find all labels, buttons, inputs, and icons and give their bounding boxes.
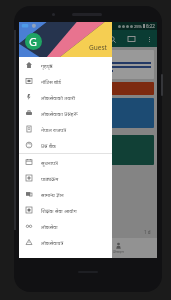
staticText: Civil Sub Engineer [78, 149, 98, 161]
button[interactable]: लोक सेवा आयोगको नयाँ सूचना [22, 50, 154, 79]
button[interactable]: व्यक्तिगत जानकारी [22, 98, 154, 128]
staticText: नोटिस बोर्ड [41, 78, 62, 85]
button[interactable]: गृहपृष्ठ [19, 57, 112, 73]
staticText: लोकसेवाको तयारी [41, 94, 76, 101]
button[interactable]: Messages [125, 33, 137, 45]
button[interactable]: लोकसेवाको तयारी [19, 89, 112, 105]
button[interactable]: सूचनापत्र [19, 154, 112, 170]
button[interactable]: लोकसेवापत्र [19, 234, 112, 250]
staticText: सामान्य ज्ञान [41, 191, 64, 198]
button[interactable]: Profile [113, 242, 124, 254]
staticText: लोकसेवापत्र [41, 239, 64, 246]
button[interactable]: प्रश्न बैंक [19, 137, 112, 153]
button[interactable]: सामान्य ज्ञान [19, 186, 112, 202]
button[interactable]: More options [144, 34, 154, 44]
staticText: लोकसेवाका प्रश्नहरू [41, 110, 78, 117]
staticText: 6:22 [146, 23, 155, 29]
staticText: लोक सेवा आयोगको नयाँ सूचना [25, 53, 93, 60]
button[interactable]: नेपाल राजपत्र [19, 121, 112, 137]
button[interactable]: पाठ्यक्रम [19, 170, 112, 186]
staticText: 25% [134, 24, 142, 29]
staticText: गृहपृष्ठ [41, 62, 53, 69]
button[interactable]: लोकसेवाका प्रश्नहरू [19, 105, 112, 121]
staticText: प्रश्न बैंक [41, 142, 56, 149]
button[interactable]: नोटिस बोर्ड [19, 73, 112, 89]
button[interactable]: Account avatar [25, 33, 42, 50]
button[interactable]: Search [106, 33, 118, 45]
staticText: 1 d [144, 229, 151, 235]
button[interactable]: Civil Sub Engineer [22, 135, 154, 165]
button[interactable]: लोकसेवा [19, 218, 112, 234]
staticText: लोकसेवा [41, 223, 58, 230]
staticText: पाठ्यक्रम [41, 175, 59, 182]
staticText: शिक्षक सेवा आयोग [41, 207, 77, 214]
staticText: नेपाल राजपत्र [41, 126, 67, 133]
button[interactable]: शिक्षक सेवा आयोग [19, 202, 112, 218]
button[interactable]: Join Now » [22, 82, 154, 95]
staticText: G [29, 34, 38, 49]
staticText: सूचनापत्र [41, 159, 58, 166]
staticText: प्रोफाइल [113, 249, 124, 254]
staticText: Guest [89, 43, 107, 52]
